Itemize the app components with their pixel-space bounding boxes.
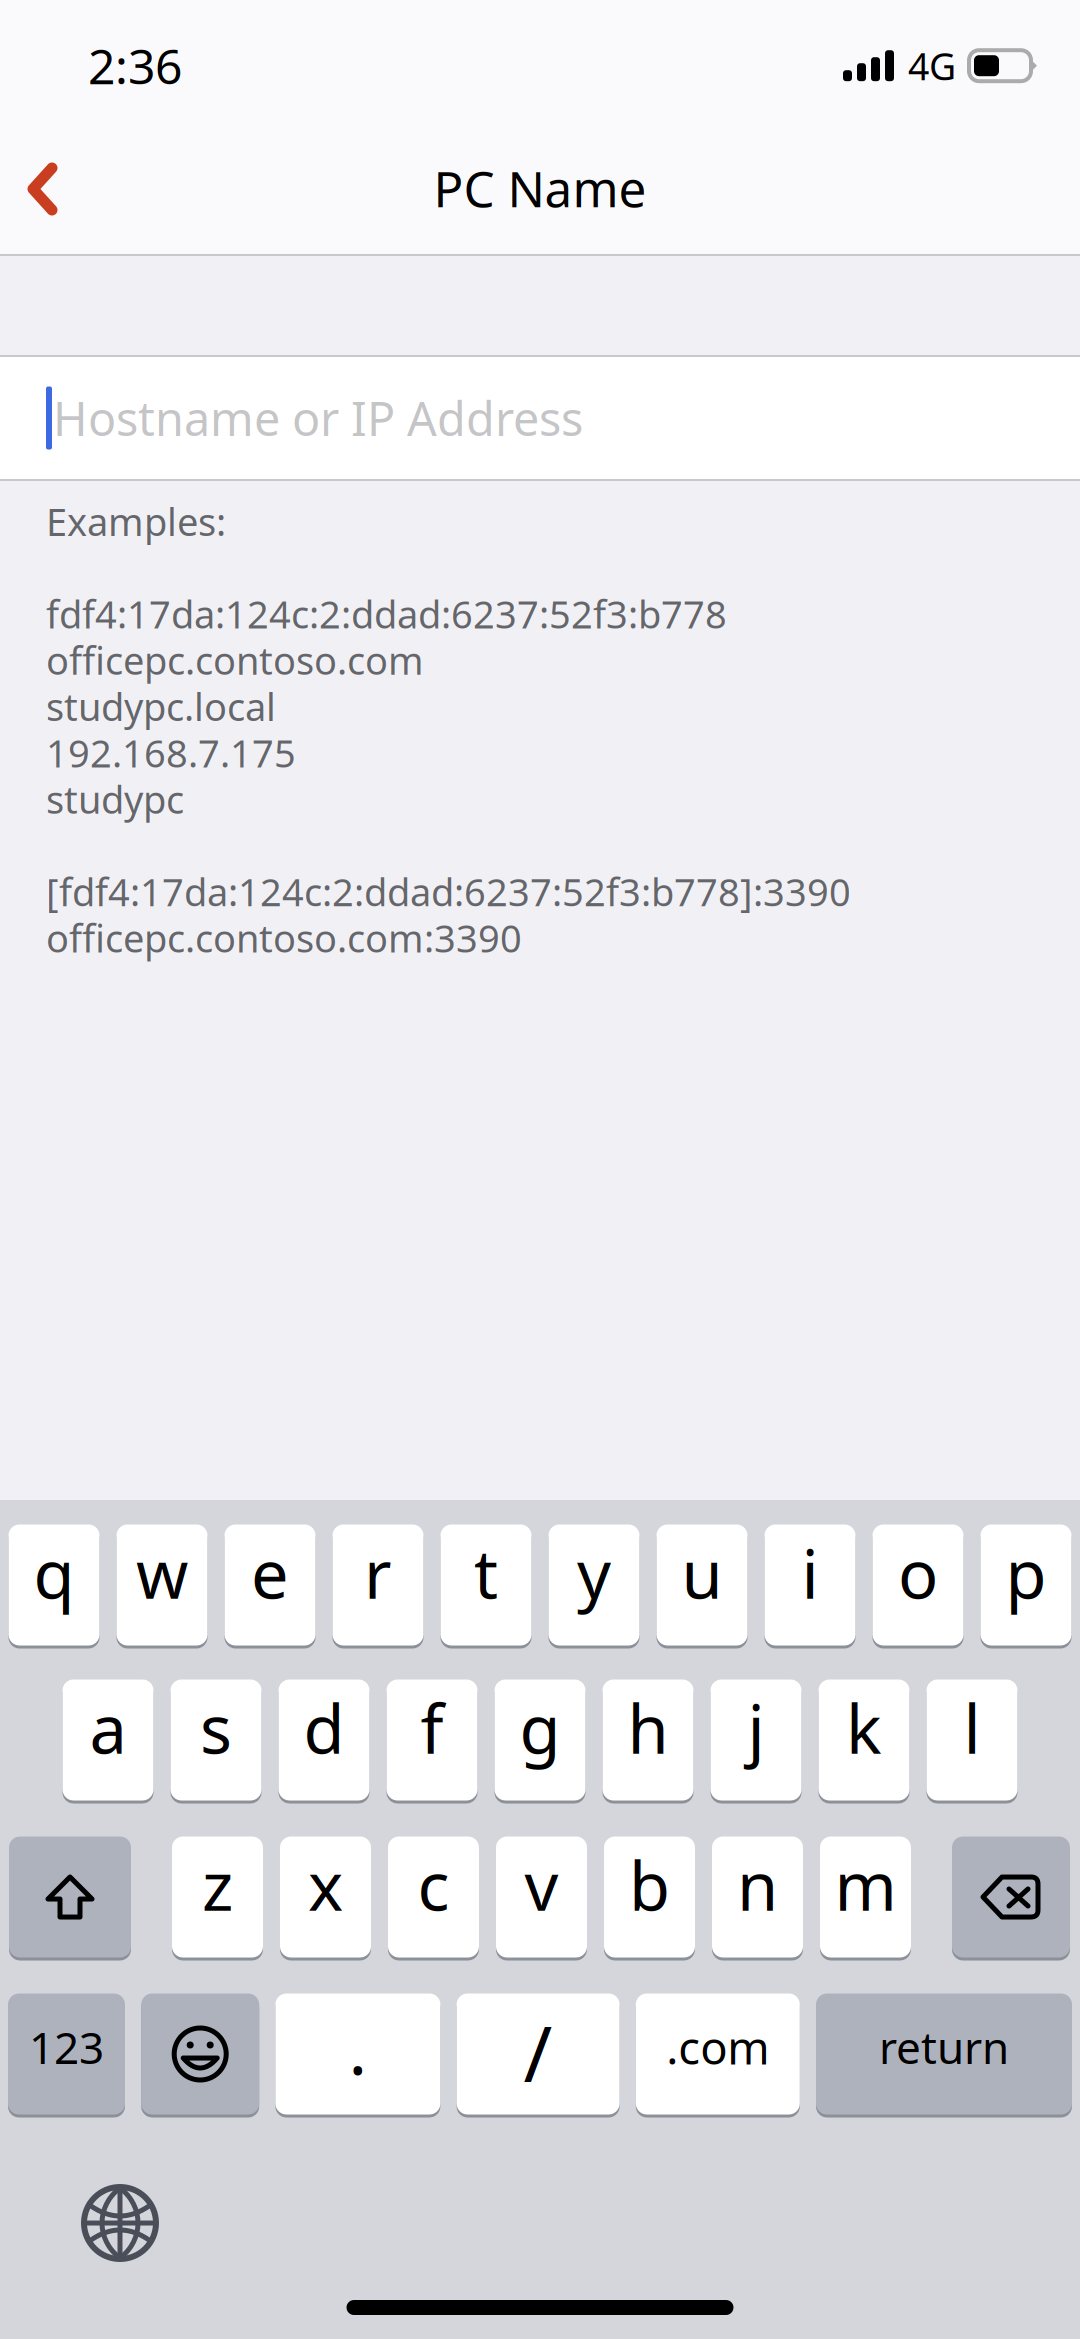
staticText: f (420, 1683, 443, 1773)
button[interactable]: m (820, 1835, 911, 1959)
staticText: d (303, 1683, 344, 1773)
button[interactable]: q (8, 1523, 99, 1647)
staticText: .com (666, 2016, 769, 2078)
staticText: a (89, 1683, 126, 1773)
button[interactable]: return (816, 1992, 1072, 2116)
staticText: officepc.contoso.com (46, 634, 424, 686)
staticText: k (846, 1683, 882, 1773)
staticText: return (879, 2017, 1009, 2077)
button[interactable]: s (170, 1678, 261, 1802)
button[interactable]: h (602, 1678, 693, 1802)
button[interactable]: w (116, 1523, 207, 1647)
staticText: Examples: (46, 495, 226, 547)
button[interactable]: v (496, 1835, 587, 1959)
staticText: [fdf4:17da:124c:2:ddad:6237:52f3:b778]:3… (46, 866, 851, 917)
button[interactable]: y (548, 1523, 639, 1647)
staticText: z (202, 1840, 233, 1930)
staticText: w (136, 1528, 188, 1618)
button[interactable]: t (440, 1523, 531, 1647)
button[interactable]: Emoji (141, 1992, 259, 2116)
staticText: s (200, 1683, 232, 1773)
button[interactable]: c (388, 1835, 479, 1959)
staticText: officepc.contoso.com:3390 (46, 912, 522, 964)
staticText: 192.168.7.175 (46, 727, 296, 779)
staticText: / (524, 1999, 553, 2105)
button[interactable]: b (604, 1835, 695, 1959)
button[interactable]: f (386, 1678, 477, 1802)
staticText: c (417, 1840, 449, 1930)
staticText: fdf4:17da:124c:2:ddad:6237:52f3:b778 (46, 588, 727, 640)
staticText: p (1005, 1528, 1046, 1618)
button[interactable]: k (818, 1678, 909, 1802)
staticText: 123 (29, 2017, 104, 2077)
staticText: y (577, 1528, 611, 1618)
button[interactable]: o (872, 1523, 963, 1647)
staticText: Hostname or IP Address (53, 386, 583, 450)
staticText: i (801, 1528, 818, 1618)
staticText: 2:36 (88, 33, 182, 98)
button[interactable]: g (494, 1678, 585, 1802)
staticText: j (747, 1683, 764, 1773)
staticText: q (33, 1528, 74, 1618)
button[interactable]: Next keyboard (81, 2184, 159, 2262)
staticText: studypc (46, 773, 184, 825)
button[interactable]: n (712, 1835, 803, 1959)
staticText: studypc.local (46, 680, 276, 732)
staticText: t (474, 1528, 498, 1618)
staticText: e (251, 1528, 289, 1618)
staticText: PC Name (433, 154, 646, 222)
staticText: o (898, 1528, 938, 1618)
button[interactable]: a (62, 1678, 153, 1802)
staticText: b (629, 1840, 670, 1930)
staticText: m (834, 1840, 896, 1930)
staticText: x (308, 1840, 343, 1930)
staticText: 4G (908, 40, 956, 91)
button[interactable]: e (224, 1523, 315, 1647)
button[interactable]: p (980, 1523, 1071, 1647)
button[interactable]: x (280, 1835, 371, 1959)
staticText: v (524, 1840, 558, 1930)
button[interactable]: r (332, 1523, 423, 1647)
button[interactable]: z (172, 1835, 263, 1959)
staticText: g (519, 1683, 560, 1773)
button[interactable]: 123 (8, 1992, 125, 2116)
button[interactable]: Delete (952, 1835, 1070, 1959)
staticText: l (963, 1683, 980, 1773)
button[interactable]: .com (636, 1992, 800, 2116)
button[interactable]: Shift (9, 1835, 131, 1959)
button[interactable]: / (457, 1992, 620, 2116)
staticText: h (627, 1683, 668, 1773)
button[interactable]: d (278, 1678, 369, 1802)
button[interactable]: j (710, 1678, 801, 1802)
button[interactable]: l (926, 1678, 1017, 1802)
button[interactable]: . (275, 1992, 440, 2116)
staticText: r (364, 1528, 392, 1618)
staticText: . (348, 2001, 367, 2095)
staticText: n (737, 1840, 778, 1930)
button[interactable]: Back (0, 129, 85, 241)
staticText: u (681, 1528, 722, 1618)
button[interactable]: i (764, 1523, 855, 1647)
button[interactable]: u (656, 1523, 747, 1647)
